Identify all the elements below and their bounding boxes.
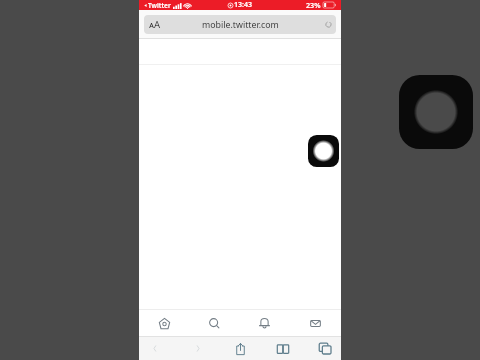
button[interactable]: Bookmarks [270, 337, 296, 360]
staticText: 23% [306, 0, 321, 10]
button[interactable]: Search [189, 310, 239, 336]
button[interactable]: Home [139, 310, 189, 336]
other: Tap indicator [308, 135, 339, 167]
button[interactable]: Share [227, 337, 253, 360]
staticText: mobile.twitter.com [202, 19, 279, 31]
button[interactable]: Notifications [239, 310, 290, 336]
button[interactable]: Messages [290, 310, 341, 336]
other: Tap indicator [399, 75, 473, 149]
staticText: 13:43 [234, 0, 252, 10]
button[interactable]: Tabs [312, 337, 338, 360]
button[interactable]: ᴀA [144, 15, 336, 34]
staticText: ᴀA [149, 18, 161, 31]
staticText: Twitter [148, 1, 171, 10]
